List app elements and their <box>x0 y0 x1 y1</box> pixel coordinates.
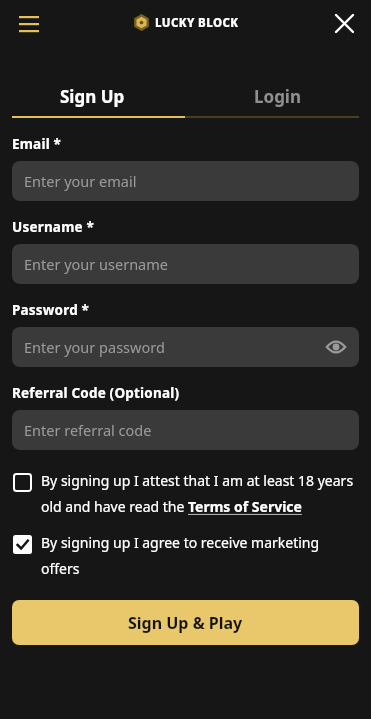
button[interactable]: Enter referral code <box>12 410 359 450</box>
staticText: Enter referral code <box>24 420 152 440</box>
button[interactable]: Enter your email <box>12 161 359 201</box>
staticText: Password * <box>12 301 90 319</box>
staticText: By signing up I agree to receive marketi… <box>41 533 359 579</box>
staticText: Email * <box>12 135 62 153</box>
button[interactable]: Enter your password <box>12 327 359 367</box>
staticText: Username * <box>12 218 94 236</box>
button[interactable]: Sign Up & Play <box>12 600 359 645</box>
button[interactable]: Close <box>327 6 361 40</box>
staticText: Sign Up <box>60 85 125 108</box>
button[interactable]: Enter your username <box>12 244 359 284</box>
staticText: Referral Code (Optional) <box>12 384 180 402</box>
staticText: Enter your password <box>24 337 165 357</box>
button[interactable]: By signing up I agree to receive marketi… <box>12 533 359 579</box>
button[interactable]: By signing up I attest that I am at leas… <box>12 471 359 517</box>
staticText: Login <box>254 85 302 108</box>
button[interactable]: Sign Up <box>0 81 185 111</box>
staticText: Enter your email <box>24 171 137 191</box>
staticText: Enter your username <box>24 254 168 274</box>
staticText: By signing up I attest that I am at leas… <box>41 471 359 517</box>
staticText: LUCKY BLOCK <box>155 15 239 31</box>
button[interactable]: Login <box>185 81 371 111</box>
button[interactable]: Menu <box>12 6 46 40</box>
staticText: Sign Up & Play <box>128 612 243 634</box>
button[interactable]: Show password <box>323 334 349 360</box>
